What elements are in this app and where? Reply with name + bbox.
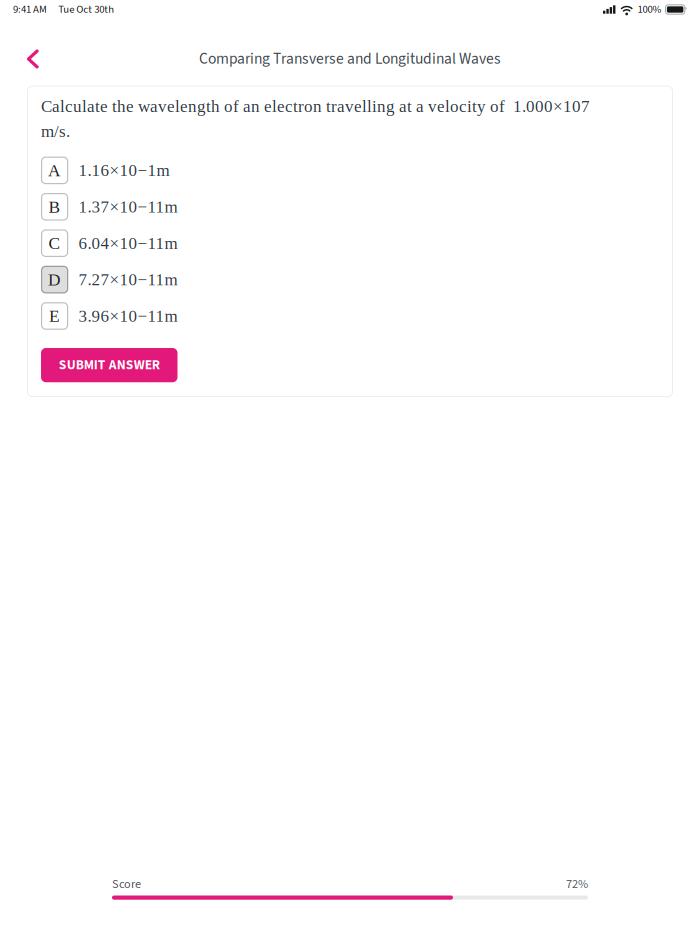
staticText: C	[49, 234, 61, 253]
staticText: Score	[112, 875, 141, 893]
staticText: 1.16×10−1m	[79, 161, 170, 180]
staticText: 3.96×10−11m	[79, 307, 178, 325]
staticText: 1.37×10−11m	[79, 197, 178, 216]
button[interactable]: D	[41, 266, 659, 293]
staticText: 72%	[566, 875, 588, 893]
button[interactable]: C	[41, 229, 659, 257]
staticText: SUBMIT ANSWER	[59, 355, 160, 375]
staticText: D	[48, 270, 61, 289]
staticText: A	[48, 161, 61, 180]
staticText: Calculate the wavelength of an electron …	[41, 97, 590, 141]
staticText: Tue Oct 30th	[58, 2, 114, 17]
staticText: Comparing Transverse and Longitudinal Wa…	[199, 48, 501, 70]
staticText: 7.27×10−11m	[79, 270, 178, 289]
button[interactable]: A	[41, 157, 659, 184]
button[interactable]: B	[41, 193, 659, 221]
button[interactable]: SUBMIT ANSWER	[41, 348, 177, 382]
staticText: 6.04×10−11m	[79, 234, 178, 253]
staticText: B	[49, 197, 61, 216]
button[interactable]: E	[41, 302, 659, 330]
staticText: 9:41 AM	[13, 2, 47, 17]
staticText: 100%	[637, 2, 661, 17]
staticText: E	[49, 306, 60, 326]
button[interactable]: Back	[18, 44, 48, 74]
